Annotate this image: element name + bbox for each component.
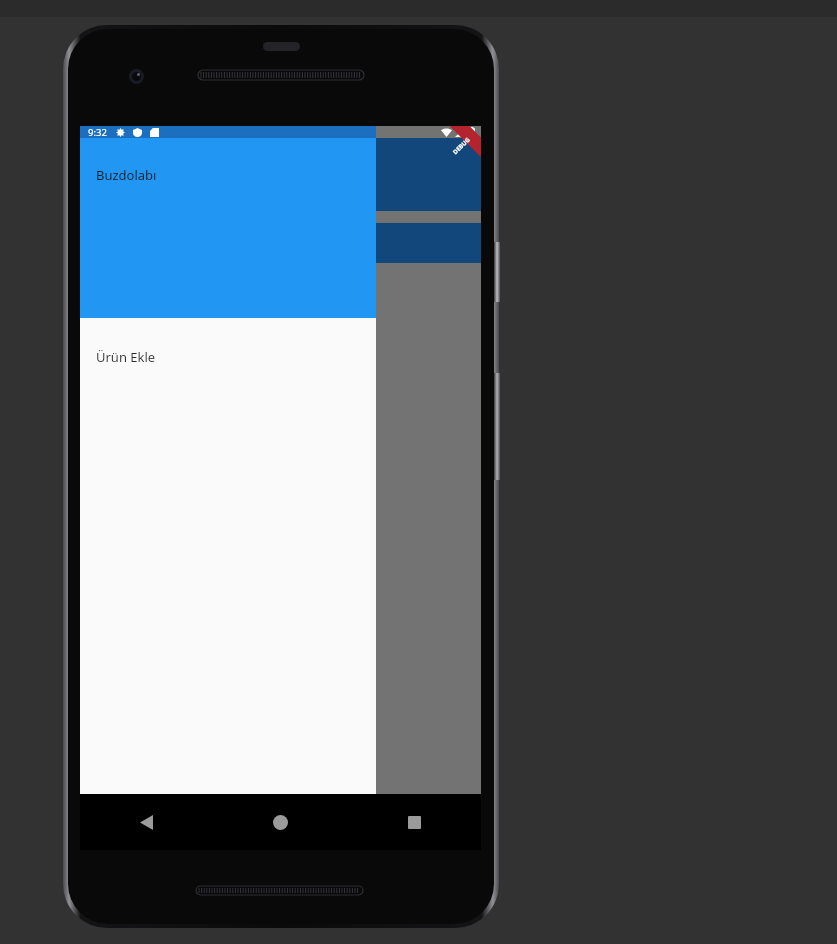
button[interactable]: Home bbox=[213, 794, 347, 850]
staticText: DEBUG bbox=[451, 136, 472, 156]
button[interactable]: Recent apps bbox=[347, 794, 481, 850]
button[interactable]: Buzdolabı bbox=[80, 126, 376, 318]
staticText: 9:32 bbox=[88, 126, 107, 138]
staticText: Buzdolabı bbox=[96, 166, 157, 184]
button[interactable]: Back bbox=[80, 794, 213, 850]
staticText: Ürün Ekle bbox=[96, 348, 156, 366]
button[interactable]: Ürün Ekle bbox=[80, 318, 376, 794]
